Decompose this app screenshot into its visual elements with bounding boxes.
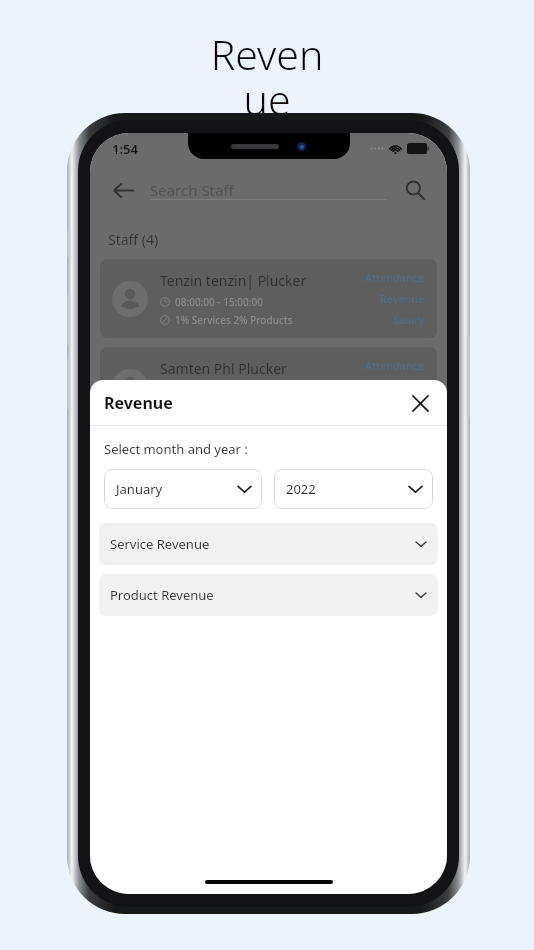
button[interactable]: Pema Dorji Plucker xyxy=(100,435,437,514)
staticText: Service Revenue xyxy=(110,535,416,553)
staticText: Tenzin tenzin| Plucker xyxy=(160,271,307,290)
button[interactable]: Salary xyxy=(393,400,425,415)
button[interactable]: Tenzin tenzin| Plucker xyxy=(100,259,437,338)
button[interactable]: Back xyxy=(104,171,142,209)
button[interactable]: Revenue xyxy=(380,467,425,482)
button[interactable]: Search xyxy=(397,172,433,208)
staticText: 1% Services 2% Products xyxy=(175,489,293,503)
staticText: 1% Services 2% Products xyxy=(175,313,293,327)
button[interactable]: Salary xyxy=(393,312,425,327)
button[interactable]: Salary xyxy=(393,488,425,503)
staticText: Search Staff xyxy=(150,180,234,200)
staticText: Product Revenue xyxy=(110,586,416,604)
staticText: January xyxy=(116,480,238,498)
button[interactable]: Revenue xyxy=(380,291,425,306)
button[interactable]: Attendance xyxy=(365,358,425,373)
button[interactable]: 2022 xyxy=(274,469,433,509)
staticText: 1:54 xyxy=(112,140,138,158)
staticText: 2022 xyxy=(286,480,409,498)
staticText: 08:00:00 - 15:00:00 xyxy=(175,295,263,309)
button[interactable]: Product Revenue xyxy=(99,574,438,616)
staticText: Pema Dorji Plucker xyxy=(160,447,285,466)
staticText: Staff (4) xyxy=(108,230,159,249)
button[interactable]: Revenue xyxy=(380,379,425,394)
staticText: 08:00:00 - 15:00:00 xyxy=(175,471,263,485)
button[interactable]: January xyxy=(104,469,262,509)
button[interactable]: Attendance xyxy=(365,270,425,285)
button[interactable]: Samten Phl Plucker xyxy=(100,347,437,426)
staticText: Revenue xyxy=(104,392,173,414)
staticText: Samten Phl Plucker xyxy=(160,359,287,378)
staticText: Revenue xyxy=(202,26,332,127)
button[interactable]: Close xyxy=(403,386,437,420)
staticText: Select month and year : xyxy=(104,440,248,458)
button[interactable]: Service Revenue xyxy=(99,523,438,565)
